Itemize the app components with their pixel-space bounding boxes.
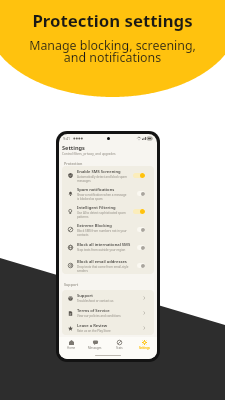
- staticText: Troubleshoot or contact us: [77, 299, 114, 303]
- staticText: 9:41: [63, 136, 71, 141]
- staticText: Block all international SMS: [77, 242, 131, 248]
- button[interactable]: Enabled: [133, 209, 145, 214]
- button[interactable]: Enabled: [133, 173, 145, 178]
- staticText: Stats: [116, 346, 123, 350]
- button[interactable]: Disabled: [133, 245, 145, 250]
- button[interactable]: Block all email addresses: [62, 256, 154, 274]
- staticText: Intelligent Filtering: [77, 205, 116, 211]
- staticText: Drop texts that come from email-style se…: [77, 265, 129, 272]
- staticText: Home: [67, 346, 76, 350]
- staticText: View our policies and conditions: [77, 314, 121, 318]
- staticText: Automatically detect and block spam mess…: [77, 175, 127, 182]
- staticText: Use AI to detect sophisticated spam patt…: [77, 211, 126, 218]
- staticText: Terms of Service: [77, 308, 110, 314]
- staticText: Protection settings: [32, 9, 193, 32]
- staticText: Protection: [64, 161, 83, 166]
- staticText: Settings: [139, 346, 150, 350]
- button[interactable]: Spam notifications: [62, 184, 154, 202]
- button[interactable]: Disabled: [133, 263, 145, 268]
- button[interactable]: Leave a Review: [62, 320, 154, 335]
- staticText: Control filters, privacy, and upgrades: [62, 152, 116, 156]
- button[interactable]: Enable SMS Screening: [62, 166, 154, 184]
- staticText: Stop texts from outside your region: [77, 248, 126, 252]
- staticText: Rate us on the Play Store: [77, 329, 111, 333]
- button[interactable]: Support: [62, 290, 154, 305]
- button[interactable]: Terms of Service: [62, 305, 154, 320]
- staticText: Extreme Blocking: [77, 223, 112, 229]
- staticText: Leave a Review: [77, 323, 108, 329]
- staticText: Spam notifications: [77, 187, 115, 193]
- staticText: Enable SMS Screening: [77, 169, 121, 175]
- button[interactable]: Block all international SMS: [62, 238, 154, 256]
- button[interactable]: Settings: [132, 339, 157, 351]
- button[interactable]: Messages: [83, 339, 107, 351]
- staticText: Block all email addresses: [77, 259, 127, 265]
- staticText: Support: [64, 282, 79, 287]
- staticText: Support: [77, 293, 93, 299]
- staticText: Block SMS from numbers not in your conta…: [77, 229, 127, 236]
- button[interactable]: Disabled: [133, 191, 145, 196]
- staticText: Messages: [88, 346, 102, 350]
- button[interactable]: Home: [59, 339, 83, 351]
- staticText: Manage blocking, screening, and notifica…: [29, 37, 196, 66]
- button[interactable]: Intelligent Filtering: [62, 202, 154, 220]
- button[interactable]: Stats: [107, 339, 132, 351]
- button[interactable]: Disabled: [133, 227, 145, 232]
- staticText: Show a notification when a message is bl…: [77, 193, 127, 200]
- button[interactable]: Extreme Blocking: [62, 220, 154, 238]
- staticText: Settings: [62, 144, 85, 152]
